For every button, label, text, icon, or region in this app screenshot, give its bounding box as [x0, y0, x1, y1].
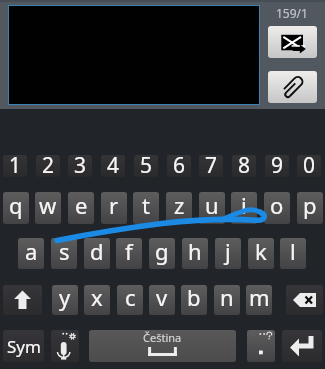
button[interactable]: m	[246, 285, 272, 315]
button[interactable]: o	[264, 192, 290, 224]
button[interactable]: Sym	[3, 330, 44, 362]
button[interactable]: u	[199, 192, 225, 224]
staticText: 3	[74, 155, 87, 173]
button[interactable]: g	[149, 238, 175, 269]
staticText: d	[90, 238, 104, 266]
button[interactable]: 7	[199, 155, 223, 177]
staticText: s	[59, 238, 70, 266]
staticText: Čeština	[143, 330, 182, 344]
button[interactable]: j	[215, 238, 241, 269]
button[interactable]: 8	[232, 155, 256, 177]
button[interactable]: b	[181, 285, 207, 315]
button[interactable]: e	[68, 192, 94, 224]
staticText: 8	[238, 155, 251, 173]
staticText: h	[188, 238, 202, 266]
button[interactable]: 4	[101, 155, 125, 177]
staticText: y	[59, 285, 71, 312]
button[interactable]: t	[133, 192, 159, 224]
staticText: g	[155, 238, 169, 266]
staticText: a	[25, 238, 38, 266]
staticText: p	[303, 192, 317, 220]
button[interactable]: h	[182, 238, 208, 269]
staticText: 5	[140, 155, 153, 173]
button[interactable]: Period	[247, 330, 275, 362]
staticText: 1	[9, 155, 22, 173]
staticText: t	[142, 192, 150, 220]
staticText: 9	[271, 155, 284, 173]
staticText: b	[187, 285, 201, 312]
staticText: i	[241, 192, 247, 220]
staticText: 6	[173, 155, 186, 173]
button[interactable]: v	[149, 285, 175, 315]
staticText: z	[174, 192, 185, 220]
staticText: 4	[107, 155, 120, 173]
button[interactable]: a	[18, 238, 44, 269]
staticText: 159/1	[276, 5, 308, 21]
button[interactable]: 1	[3, 155, 27, 177]
button[interactable]: y	[52, 285, 78, 315]
button[interactable]: k	[248, 238, 274, 269]
button[interactable]: q	[3, 192, 29, 224]
staticText: j	[225, 238, 231, 266]
button[interactable]: 2	[36, 155, 60, 177]
button[interactable]: f	[116, 238, 142, 269]
button[interactable]: 0	[297, 155, 321, 177]
staticText: m	[249, 285, 270, 312]
staticText: f	[125, 238, 133, 266]
button[interactable]: n	[214, 285, 240, 315]
staticText: v	[156, 285, 168, 312]
button[interactable]: Voice input	[51, 330, 79, 362]
staticText: w	[39, 192, 57, 220]
staticText: o	[270, 192, 284, 220]
button[interactable]: Send message	[268, 26, 317, 58]
button[interactable]: Enter	[282, 330, 322, 362]
button[interactable]: 6	[167, 155, 191, 177]
button[interactable]: c	[117, 285, 143, 315]
staticText: x	[91, 285, 103, 312]
button[interactable]: 9	[265, 155, 289, 177]
staticText: l	[290, 238, 296, 266]
button[interactable]: d	[84, 238, 110, 269]
button[interactable]: Attach	[268, 71, 317, 103]
button[interactable]: w	[35, 192, 61, 224]
staticText: u	[205, 192, 219, 220]
button[interactable]: z	[166, 192, 192, 224]
staticText: r	[109, 192, 119, 220]
button[interactable]: Space	[89, 330, 236, 362]
staticText: n	[220, 285, 234, 312]
button[interactable]: l	[280, 238, 306, 269]
button[interactable]: 3	[68, 155, 92, 177]
button[interactable]: i	[231, 192, 257, 224]
button[interactable]: s	[51, 238, 77, 269]
button[interactable]: r	[101, 192, 127, 224]
button[interactable]: 5	[134, 155, 158, 177]
button[interactable]: x	[84, 285, 110, 315]
button[interactable]: Shift	[3, 285, 42, 315]
staticText: k	[255, 238, 267, 266]
staticText: e	[75, 192, 88, 220]
staticText: c	[125, 285, 136, 312]
staticText: q	[9, 192, 23, 220]
button[interactable]: p	[297, 192, 323, 224]
staticText: 2	[42, 155, 55, 173]
staticText: Sym	[7, 335, 41, 358]
staticText: 0	[303, 155, 316, 173]
staticText: 7	[205, 155, 218, 173]
button[interactable]: Backspace	[286, 285, 323, 315]
